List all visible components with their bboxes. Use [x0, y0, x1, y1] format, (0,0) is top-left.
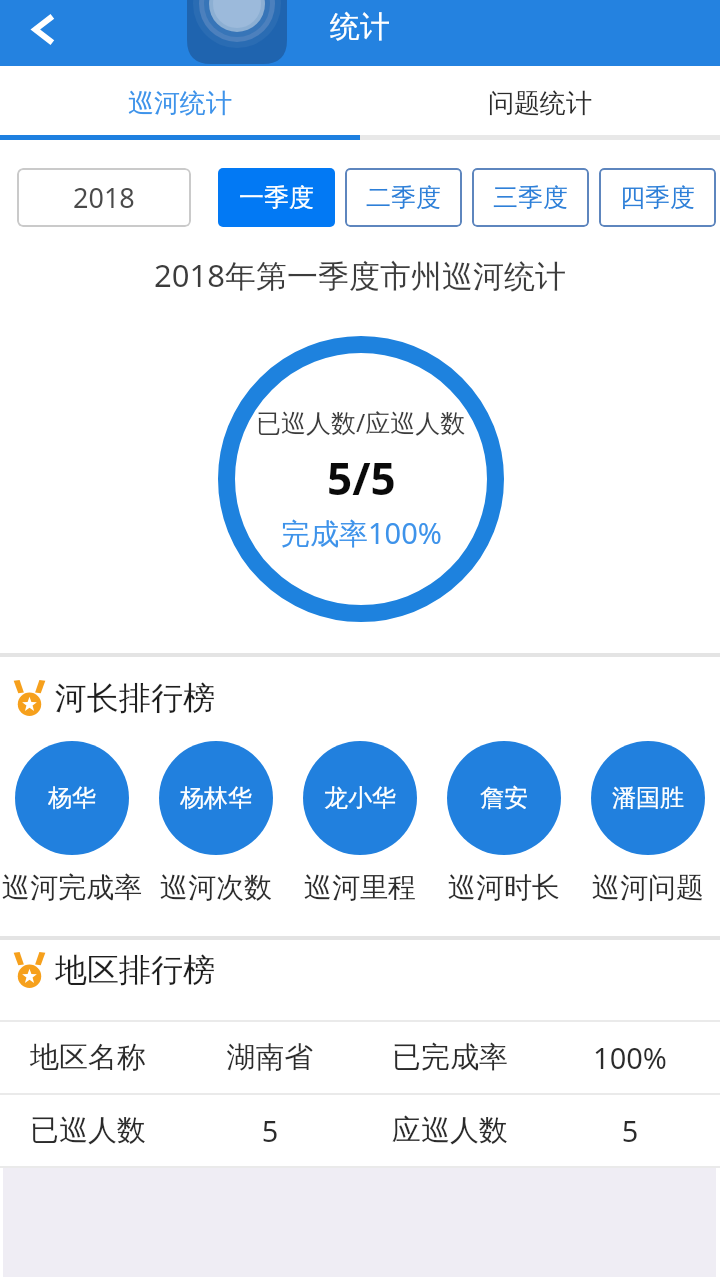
staticText: 地区名称 [30, 1039, 180, 1076]
button[interactable]: 地区名称 [0, 1022, 720, 1093]
button[interactable]: 一季度 [218, 168, 335, 227]
staticText: 巡河完成率 [0, 870, 144, 905]
staticText: 杨华 [48, 783, 96, 813]
staticText: 湖南省 [180, 1039, 360, 1076]
staticText: 龙小华 [324, 783, 396, 813]
staticText: 巡河时长 [432, 870, 576, 905]
button[interactable]: 问题统计 [360, 66, 720, 140]
staticText: 潘国胜 [612, 783, 684, 813]
button[interactable]: 2018 [17, 168, 191, 227]
staticText: 应巡人数 [392, 1112, 540, 1149]
staticText: 统计 [330, 8, 390, 46]
button[interactable]: 杨华 [0, 741, 144, 905]
button[interactable]: 龙小华 [288, 741, 432, 905]
staticText: 完成率100% [281, 513, 442, 553]
button[interactable]: 二季度 [345, 168, 462, 227]
staticText: 二季度 [366, 182, 441, 213]
staticText: 四季度 [620, 182, 695, 213]
staticText: 问题统计 [488, 87, 592, 120]
staticText: 三季度 [493, 182, 568, 213]
staticText: 5 [540, 1111, 720, 1150]
staticText: 100% [540, 1038, 720, 1077]
staticText: 巡河里程 [288, 870, 432, 905]
staticText: 巡河问题 [576, 870, 720, 905]
button[interactable]: 杨林华 [144, 741, 288, 905]
staticText: 2018 [73, 179, 135, 216]
staticText: 地区排行榜 [55, 950, 215, 990]
staticText: 巡河次数 [144, 870, 288, 905]
staticText: 已巡人数 [30, 1112, 180, 1149]
staticText: 杨林华 [180, 783, 252, 813]
staticText: 一季度 [239, 182, 314, 213]
button[interactable]: 詹安 [432, 741, 576, 905]
button[interactable]: 地区排行榜 [0, 950, 720, 990]
staticText: 已巡人数/应巡人数 [256, 405, 466, 439]
button[interactable]: 巡河统计 [0, 66, 360, 140]
staticText: 5/5 [327, 448, 396, 508]
staticText: 5 [180, 1111, 360, 1150]
staticText: 已完成率 [392, 1039, 540, 1076]
button[interactable]: 三季度 [472, 168, 589, 227]
staticText: 詹安 [480, 783, 528, 813]
button[interactable]: Back [0, 0, 84, 66]
button[interactable]: 已巡人数 [0, 1095, 720, 1166]
button[interactable]: 四季度 [599, 168, 716, 227]
staticText: 河长排行榜 [55, 678, 215, 718]
staticText: 2018年第一季度市州巡河统计 [0, 254, 720, 296]
staticText: 巡河统计 [128, 87, 232, 120]
button[interactable]: 河长排行榜 [0, 678, 720, 718]
button[interactable]: 潘国胜 [576, 741, 720, 905]
